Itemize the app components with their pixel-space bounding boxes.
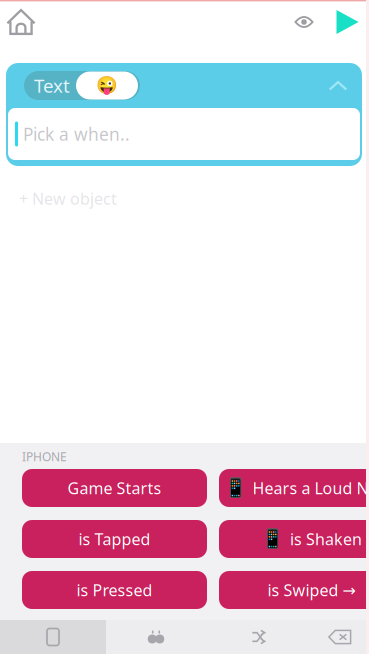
- staticText: + New object: [19, 188, 117, 209]
- button[interactable]: is Swiped →: [219, 571, 369, 609]
- button[interactable]: Preview: [283, 0, 329, 44]
- staticText: is Pressed: [76, 579, 152, 601]
- button[interactable]: 📱: [219, 469, 369, 507]
- button[interactable]: Collapse: [321, 68, 355, 102]
- staticText: is Shaken: [290, 528, 362, 550]
- button[interactable]: Play: [329, 0, 368, 44]
- button[interactable]: 📱: [219, 520, 369, 558]
- staticText: Pick a when..: [23, 122, 130, 145]
- button[interactable]: + New object: [7, 180, 129, 217]
- staticText: 📱: [261, 528, 284, 550]
- staticText: 😜: [96, 76, 118, 95]
- button[interactable]: is Pressed: [22, 571, 207, 609]
- staticText: Text: [34, 73, 70, 98]
- button[interactable]: Home: [0, 0, 42, 44]
- staticText: Game Starts: [67, 477, 161, 499]
- button[interactable]: Delete: [311, 620, 369, 654]
- button[interactable]: Swap: [206, 620, 311, 654]
- staticText: Hears a Loud Noise: [252, 477, 369, 499]
- button[interactable]: Connections: [106, 620, 206, 654]
- staticText: is Swiped →: [267, 579, 355, 601]
- button[interactable]: Device: [0, 620, 106, 654]
- staticText: IPHONE: [22, 448, 67, 464]
- staticText: is Tapped: [78, 528, 150, 550]
- button[interactable]: is Tapped: [22, 520, 207, 558]
- button[interactable]: Text: [24, 71, 140, 100]
- button[interactable]: Game Starts: [22, 469, 207, 507]
- staticText: 📱: [223, 477, 246, 499]
